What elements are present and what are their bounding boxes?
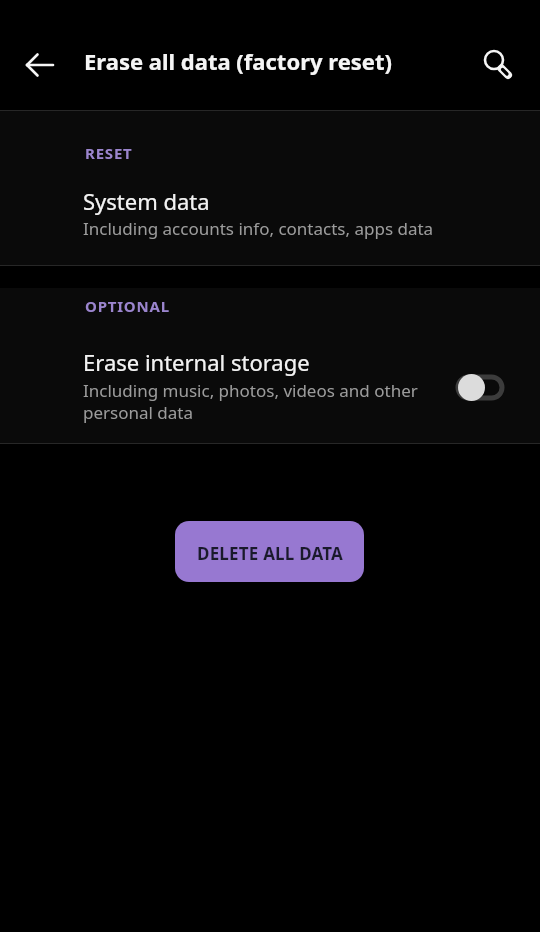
button[interactable]: DELETE ALL DATA [175, 521, 364, 582]
staticText: OPTIONAL [85, 296, 170, 316]
button[interactable]: Erase internal storage [0, 332, 540, 432]
staticText: Erase all data (factory reset) [84, 46, 392, 76]
staticText: Including accounts info, contacts, apps … [83, 217, 434, 240]
staticText: RESET [85, 143, 133, 163]
staticText: DELETE ALL DATA [197, 542, 343, 565]
button[interactable] [16, 41, 64, 89]
button[interactable] [450, 371, 512, 405]
staticText: Erase internal storage [83, 347, 310, 377]
button[interactable] [473, 40, 521, 88]
staticText: Including music, photos, videos and othe… [83, 379, 418, 424]
staticText: System data [83, 186, 210, 216]
button[interactable]: System data [0, 176, 540, 266]
